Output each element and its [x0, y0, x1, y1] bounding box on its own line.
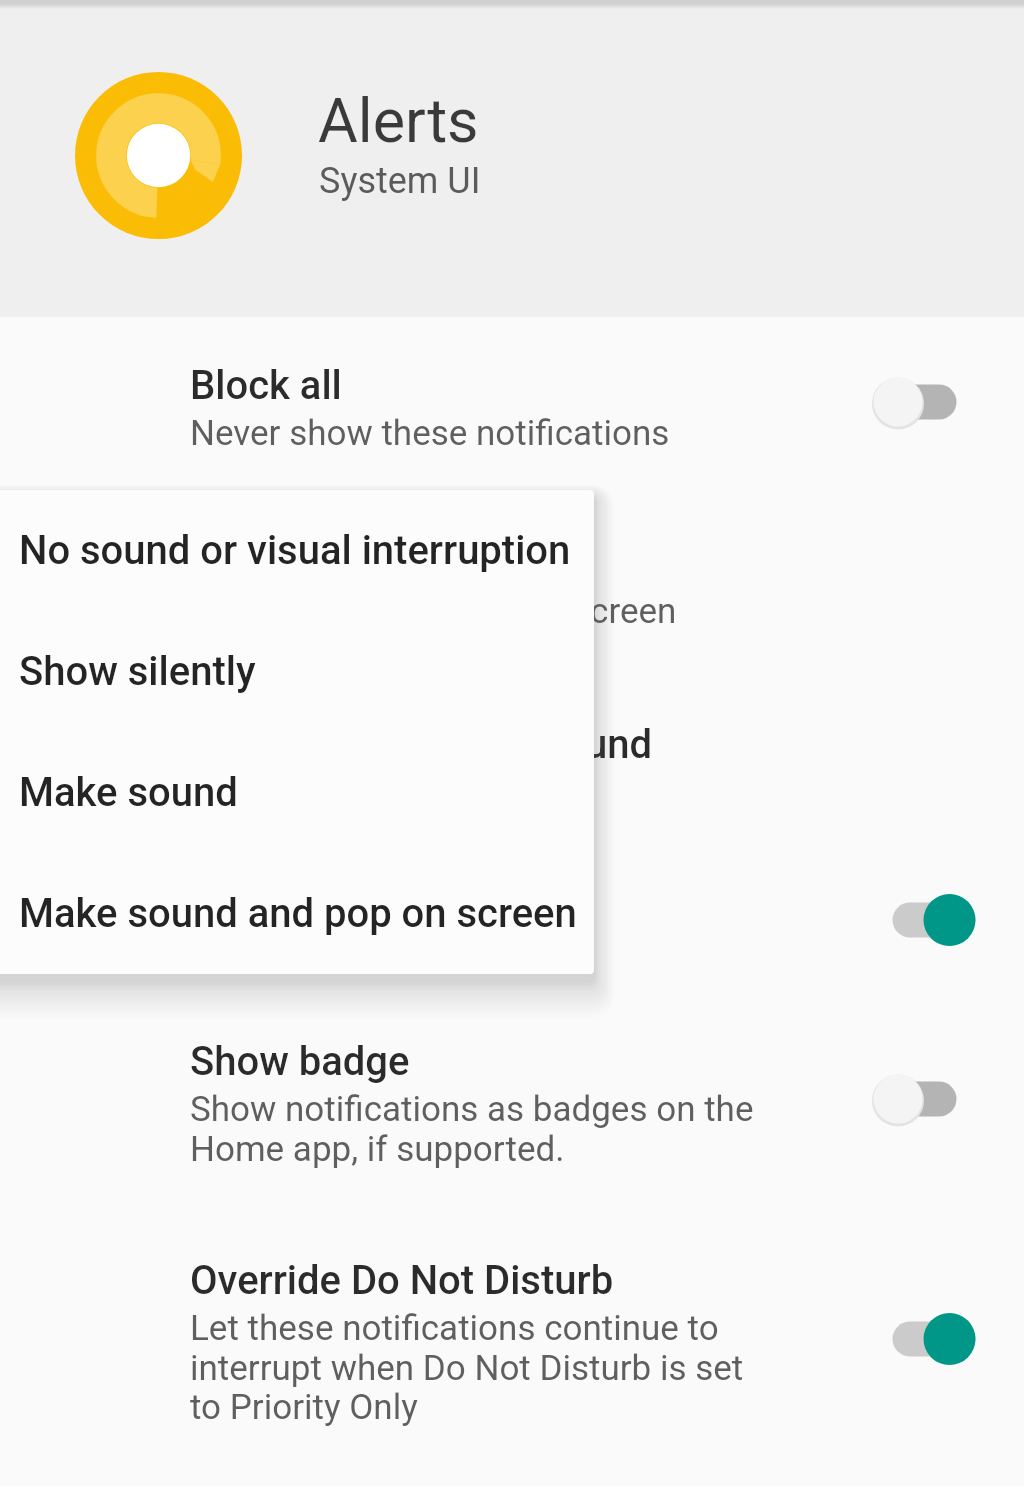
button[interactable]: Importance: [190, 540, 810, 632]
staticText: System UI: [319, 160, 481, 202]
button[interactable]: Default notification sound: [190, 721, 810, 768]
staticText: Importance: [190, 540, 396, 587]
staticText: Show badge: [190, 1038, 410, 1085]
other: System UI app icon: [75, 72, 242, 239]
staticText: Block all: [190, 362, 342, 409]
staticText: Alerts: [318, 85, 479, 156]
button[interactable]: Block all, off: [845, 347, 985, 457]
staticText: Default notification sound: [190, 721, 652, 768]
button[interactable]: No sound or visual interruption: [0, 490, 594, 611]
button[interactable]: Show badge: [190, 1038, 810, 1169]
staticText: Override Do Not Disturb: [190, 1257, 614, 1304]
button[interactable]: Block all: [190, 362, 810, 454]
button[interactable]: Override Do Not Disturb: [190, 1257, 810, 1427]
button[interactable]: Show badge, off: [845, 1044, 985, 1154]
button[interactable]: Vibrate, on: [864, 865, 1004, 975]
staticText: Make sound and pop on screen: [19, 890, 577, 937]
staticText: Let these notifications continue to inte…: [190, 1308, 744, 1427]
staticText: Never show these notifications: [190, 413, 670, 454]
button[interactable]: Make sound: [0, 732, 594, 853]
staticText: Show silently: [19, 648, 256, 695]
staticText: Show notifications as badges on the Home…: [190, 1089, 754, 1169]
staticText: Make sound and pop on screen: [190, 591, 677, 632]
button[interactable]: Make sound and pop on screen: [0, 853, 594, 974]
staticText: Also vibrate: [190, 893, 374, 934]
button[interactable]: Show silently: [0, 611, 594, 732]
staticText: Make sound: [19, 769, 238, 816]
staticText: No sound or visual interruption: [19, 527, 571, 574]
button[interactable]: Override Do Not Disturb, on: [864, 1284, 1004, 1394]
button[interactable]: Vibrate: [190, 842, 810, 934]
